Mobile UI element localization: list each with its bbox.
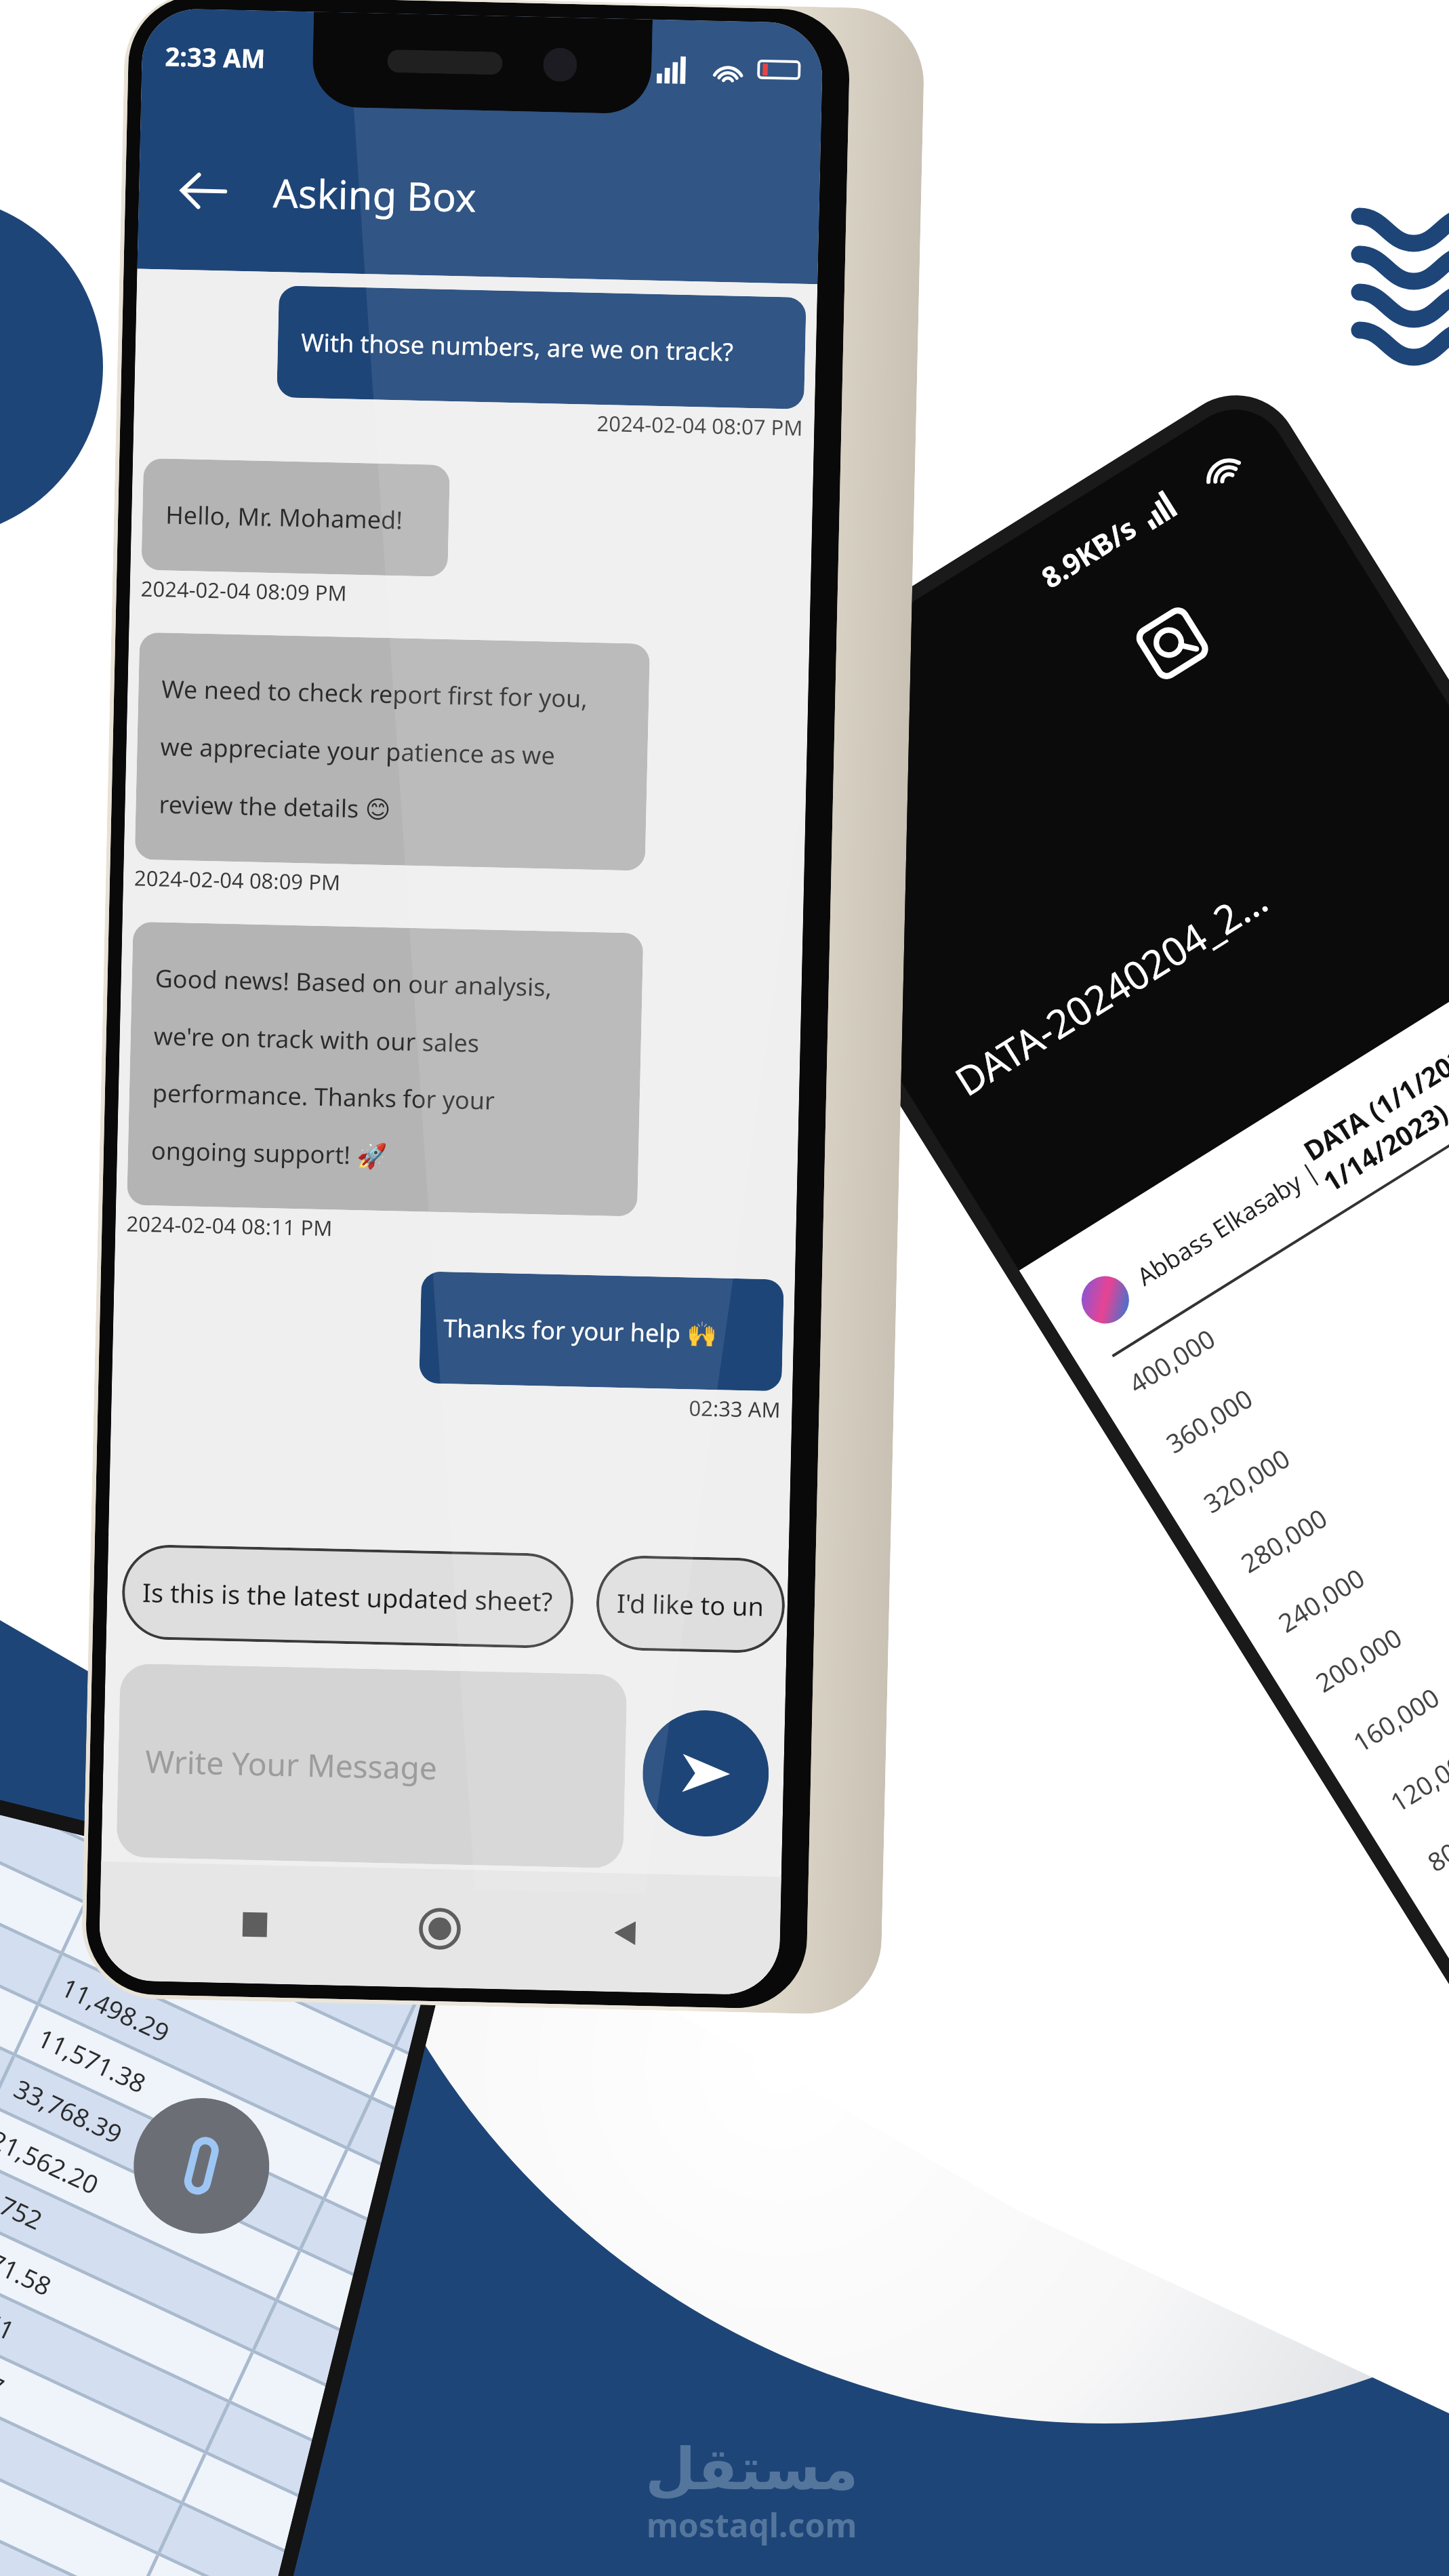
staticText: 21,562.20 bbox=[0, 2114, 110, 2204]
staticText: 120,000 bbox=[1383, 1739, 1449, 1819]
staticText: DATA-20240204_2… bbox=[945, 872, 1277, 1107]
staticText: I'd like to un bbox=[616, 1585, 765, 1623]
button[interactable]: Good news! Based on our analysis, we're … bbox=[127, 922, 643, 1217]
staticText: 18,371.58 bbox=[0, 2216, 63, 2305]
staticText: 14,752 bbox=[0, 2165, 53, 2239]
staticText: Hello, Mr. Mohamed! bbox=[165, 498, 403, 536]
staticText: 56.14 bbox=[111, 1844, 196, 1878]
button[interactable]: Write Your Message bbox=[116, 1663, 627, 1868]
staticText: Asking Box bbox=[273, 165, 477, 224]
button[interactable]: We need to check report first for you, w… bbox=[135, 632, 650, 871]
button[interactable]: Hello, Mr. Mohamed! bbox=[141, 458, 450, 577]
staticText: 33,768.39 bbox=[0, 2064, 134, 2153]
button[interactable]: Attach file bbox=[119, 2084, 284, 2248]
button[interactable]: I'd like to un bbox=[595, 1555, 786, 1654]
button[interactable]: Is this is the latest updated sheet? bbox=[121, 1544, 574, 1649]
staticText: 2:33 AM bbox=[165, 38, 266, 76]
staticText: 11,498.29 bbox=[38, 1962, 181, 2052]
staticText: We need to check report first for you, w… bbox=[159, 672, 588, 830]
staticText: 7,018.25 bbox=[62, 1912, 191, 1995]
staticText: 02:33 AM bbox=[689, 1393, 781, 1424]
staticText: مستقل bbox=[645, 2435, 859, 2503]
staticText: 200,000 bbox=[1309, 1619, 1408, 1700]
staticText: 6,984.61 bbox=[0, 2267, 26, 2350]
staticText: 29,177.27 bbox=[0, 2317, 16, 2406]
button[interactable]: Search in file bbox=[1129, 600, 1215, 686]
staticText: 400,000 bbox=[1122, 1320, 1222, 1401]
button[interactable]: With those numbers, are we on track? bbox=[277, 286, 806, 409]
button[interactable]: Home bbox=[409, 1898, 471, 1960]
staticText: With those numbers, are we on track? bbox=[301, 325, 734, 368]
staticText: 11,571.38 bbox=[14, 2013, 158, 2102]
staticText: DATA (1/1/2023 - 1/14/2023) bbox=[1296, 965, 1449, 1199]
staticText: 320,000 bbox=[1197, 1440, 1296, 1521]
staticText: 280,000 bbox=[1234, 1500, 1334, 1580]
button[interactable]: Thanks for your help 🙌 bbox=[419, 1271, 784, 1391]
button[interactable]: Recents bbox=[224, 1893, 286, 1956]
staticText: 240,000 bbox=[1271, 1560, 1371, 1640]
staticText: mostaql.com bbox=[647, 2503, 857, 2547]
staticText: Write Your Message bbox=[145, 1740, 438, 1789]
staticText: 2024-02-04 08:09 PM bbox=[134, 863, 341, 897]
staticText: 8.9KB/s bbox=[1034, 508, 1143, 596]
staticText: Abbass Elkasaby | bbox=[1131, 1155, 1325, 1293]
button[interactable]: Back bbox=[594, 1902, 657, 1964]
staticText: 2024-02-04 08:07 PM bbox=[596, 409, 804, 442]
staticText: 5,941.12 bbox=[86, 1861, 215, 1944]
staticText: Thanks for your help 🙌 bbox=[443, 1311, 717, 1351]
staticText: 2024-02-04 08:11 PM bbox=[126, 1209, 333, 1242]
staticText: 80,000 bbox=[1421, 1807, 1449, 1879]
staticText: Is this is the latest updated sheet? bbox=[142, 1574, 553, 1619]
staticText: 2024-02-04 08:09 PM bbox=[140, 574, 348, 607]
button[interactable]: Send bbox=[641, 1709, 770, 1838]
button[interactable]: Back bbox=[165, 153, 241, 229]
staticText: Good news! Based on our analysis, we're … bbox=[151, 962, 552, 1175]
staticText: 360,000 bbox=[1159, 1380, 1259, 1461]
staticText: 160,000 bbox=[1346, 1679, 1446, 1760]
